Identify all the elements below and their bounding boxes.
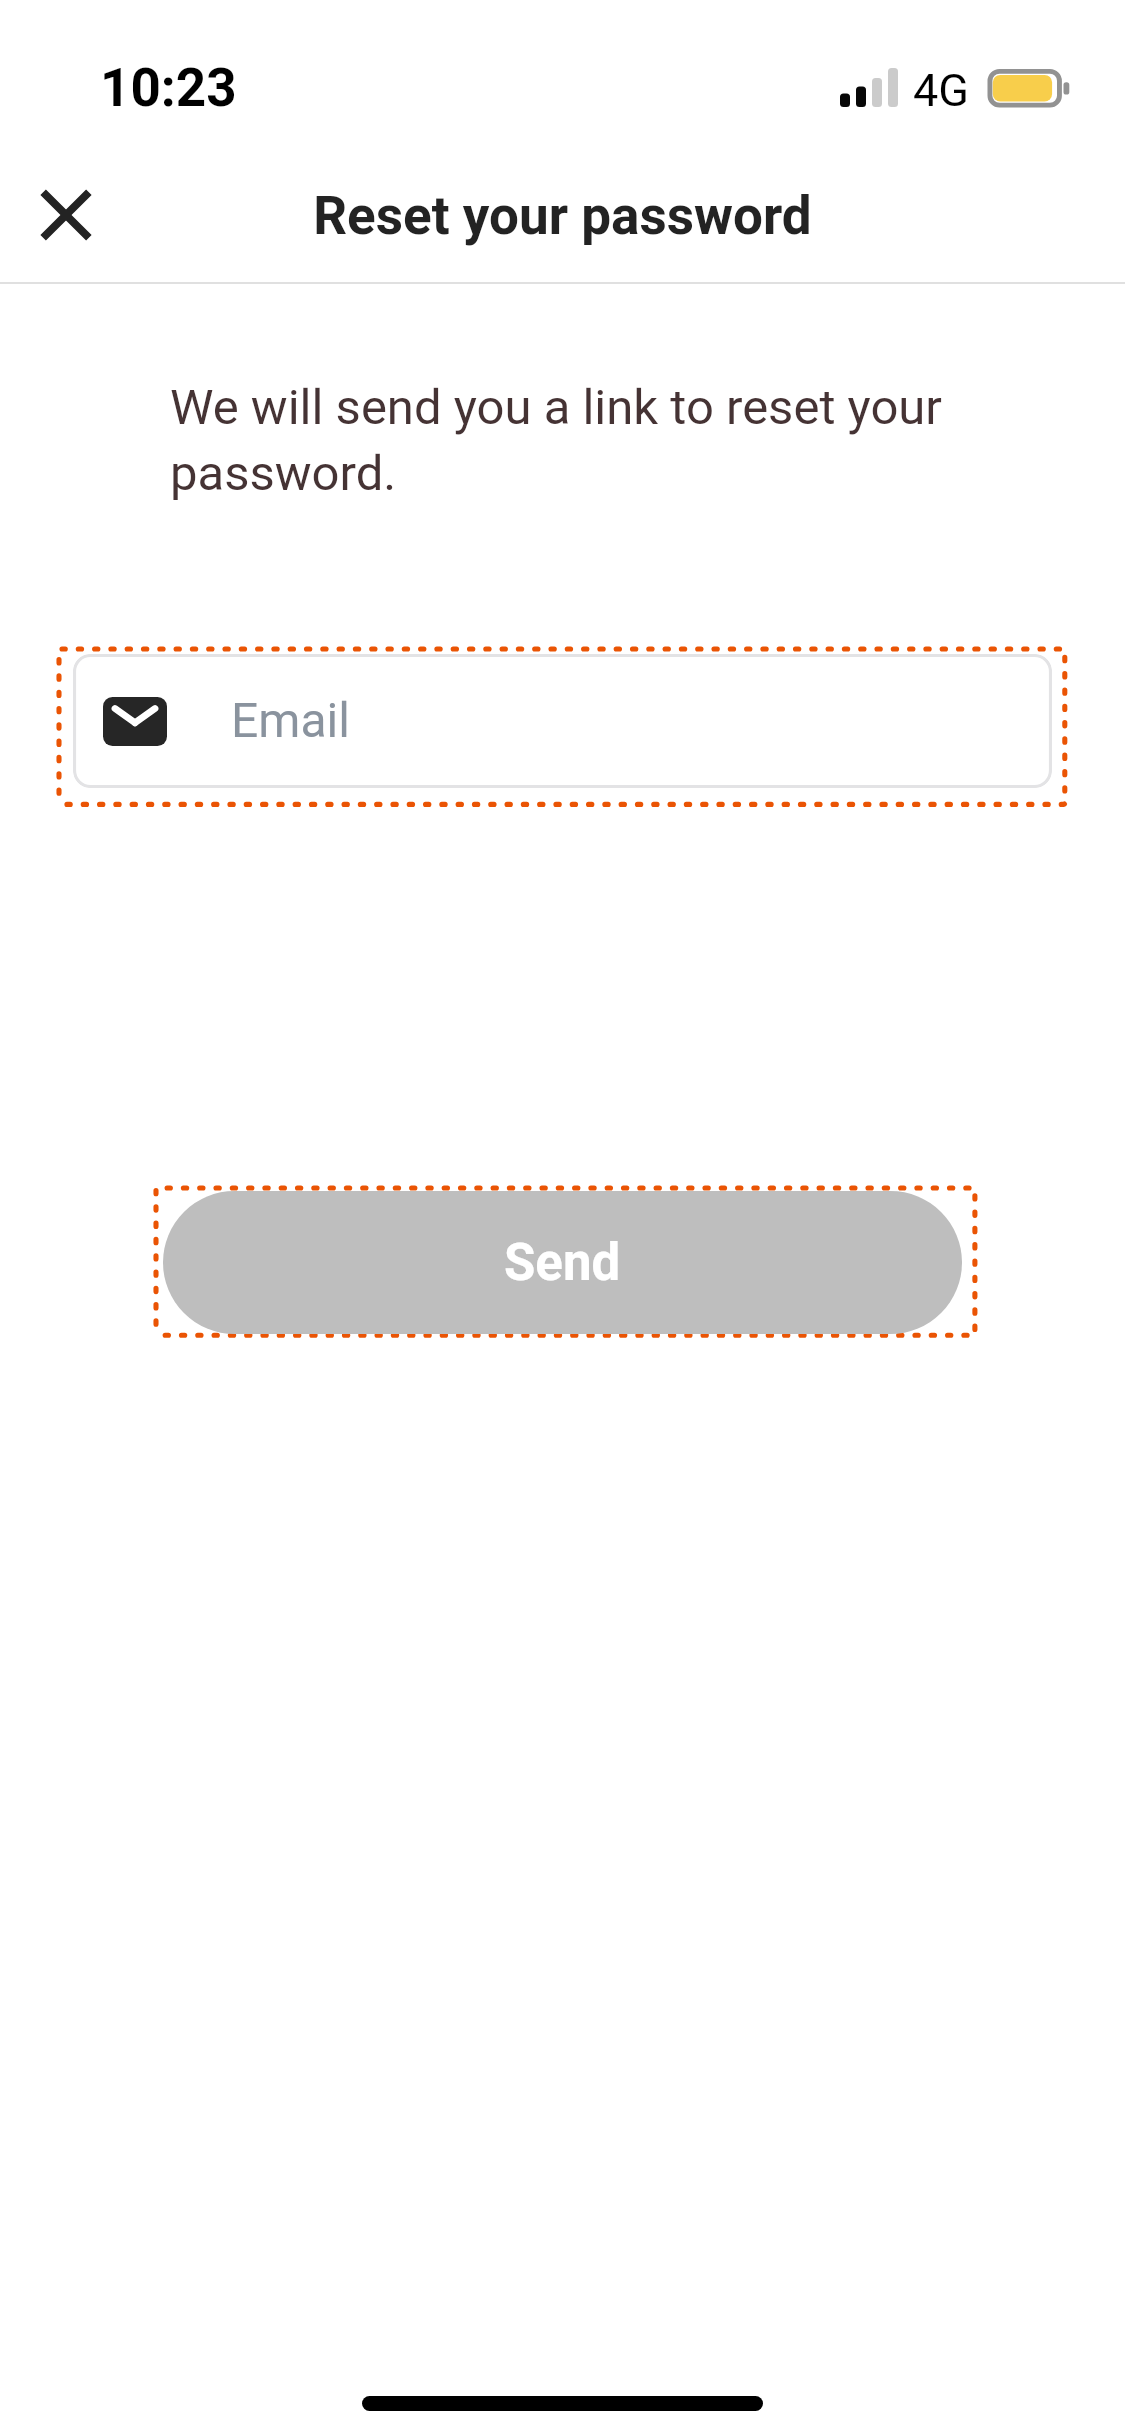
- staticText: 10:23: [100, 57, 237, 119]
- staticText: Reset your password: [0, 185, 1125, 247]
- button[interactable]: Send: [153, 1185, 980, 1341]
- staticText: We will send you a link to reset your pa…: [170, 372, 970, 504]
- button[interactable]: Close: [18, 168, 114, 264]
- button[interactable]: Email: [56, 646, 1069, 808]
- staticText: Email: [231, 692, 350, 748]
- staticText: Send: [504, 1233, 621, 1293]
- staticText: 4G: [913, 64, 969, 117]
